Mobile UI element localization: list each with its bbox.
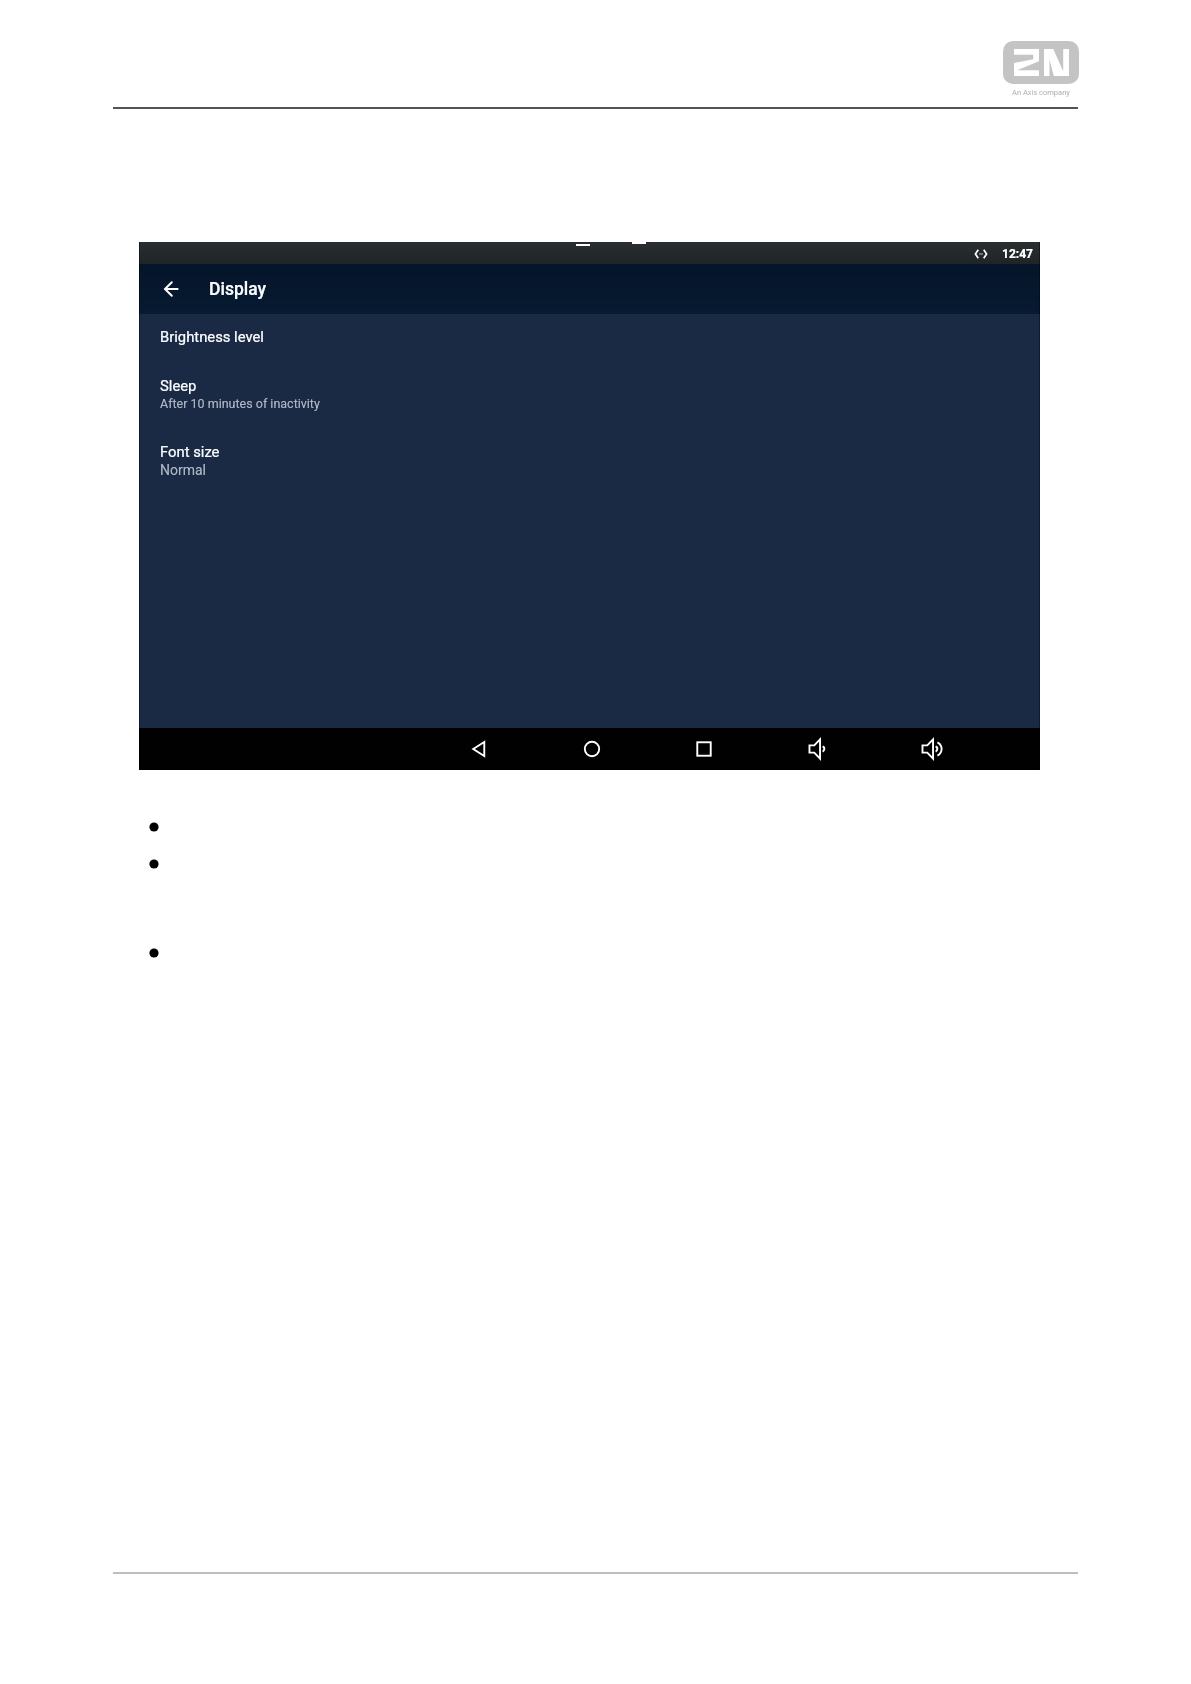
button[interactable]: Home [575, 732, 609, 766]
button[interactable]: Volume up [917, 732, 951, 766]
button[interactable]: After 10 minutes of inactivity [156, 394, 324, 413]
staticText: 12:47 [1002, 247, 1033, 261]
button[interactable]: Sleep [156, 375, 201, 396]
button[interactable]: Volume down [804, 732, 838, 766]
button[interactable]: Back [462, 732, 496, 766]
staticText: Normal [160, 462, 207, 478]
button[interactable]: Back [149, 267, 193, 311]
staticText: Font size [160, 443, 220, 460]
button[interactable]: Recents [687, 732, 721, 766]
staticText: Brightness level [160, 328, 264, 345]
button[interactable]: Normal [156, 460, 211, 480]
staticText: After 10 minutes of inactivity [160, 396, 320, 411]
button[interactable]: Brightness level [156, 326, 268, 347]
staticText: Sleep [160, 377, 197, 394]
staticText: Display [209, 279, 267, 300]
staticText: An Axis company [1012, 88, 1070, 97]
button[interactable]: Font size [156, 441, 224, 462]
